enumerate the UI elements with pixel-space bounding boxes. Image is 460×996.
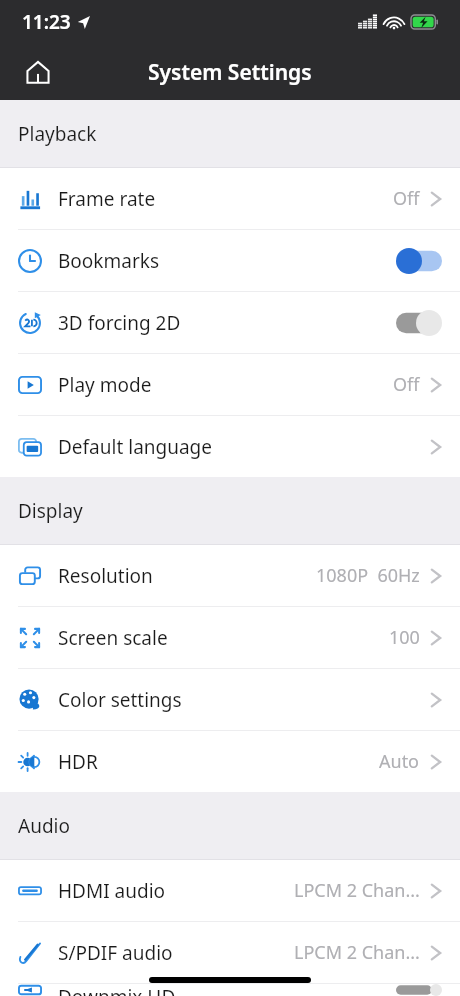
button[interactable] [396,984,442,996]
button[interactable]: 3D forcing 2D [0,292,460,353]
staticText: Downmix HD [58,984,176,996]
staticText: Resolution [58,563,153,589]
staticText: Off [393,186,420,211]
staticText: Bookmarks [58,248,160,274]
button[interactable]: Resolution [0,545,460,606]
staticText: S/PDIF audio [58,940,173,966]
staticText: Off [393,372,420,397]
staticText: Play mode [58,372,152,398]
staticText: 11:23 [22,9,71,35]
staticText: 1080P 60Hz [316,563,420,588]
staticText: Color settings [58,687,182,713]
staticText: Display [18,498,83,524]
staticText: Screen scale [58,625,168,651]
button[interactable]: Play mode [0,354,460,415]
button[interactable]: HDR [0,731,460,792]
button[interactable]: Screen scale [0,607,460,668]
staticText: LPCM 2 Chan... [294,878,420,903]
staticText: 3D forcing 2D [58,310,181,336]
button[interactable]: S/PDIF audio [0,922,460,983]
button[interactable]: HDMI audio [0,860,460,921]
button[interactable]: Default language [0,416,460,477]
staticText: System Settings [148,58,312,87]
staticText: HDMI audio [58,878,166,904]
staticText: HDR [58,749,98,775]
button[interactable]: Downmix HD [0,984,460,996]
button[interactable]: Home [14,48,62,96]
staticText: Default language [58,434,213,460]
staticText: LPCM 2 Chan... [294,940,420,965]
button[interactable] [396,310,442,336]
button[interactable] [396,248,442,274]
button[interactable]: Color settings [0,669,460,730]
button[interactable]: Bookmarks [0,230,460,291]
staticText: 100 [389,625,420,650]
staticText: Auto [379,749,420,774]
staticText: Playback [18,121,97,147]
button[interactable]: Frame rate [0,168,460,229]
staticText: Frame rate [58,186,156,212]
staticText: Audio [18,813,70,839]
